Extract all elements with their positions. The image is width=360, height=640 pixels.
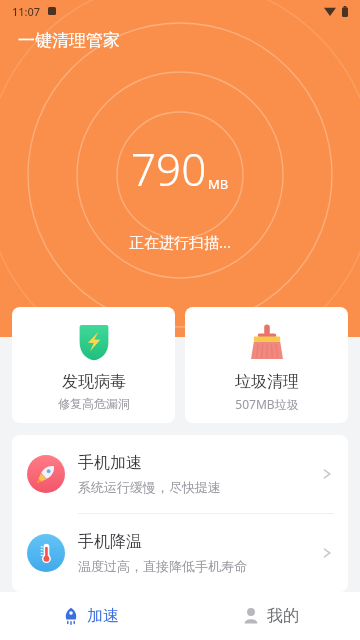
other: 垃圾清理 (247, 323, 287, 363)
staticText: 手机降温 (78, 532, 142, 552)
staticText: 790 (131, 139, 207, 199)
button[interactable]: 加速 (0, 592, 180, 640)
staticText: 加速 (87, 606, 119, 626)
staticText: 温度过高，直接降低手机寿命 (78, 558, 247, 574)
staticText: 507MB垃圾 (235, 396, 299, 412)
staticText: 系统运行缓慢，尽快提速 (78, 479, 221, 495)
button[interactable]: 发现病毒 (12, 307, 175, 423)
button[interactable]: 手机加速 (12, 435, 348, 513)
button[interactable]: 垃圾清理 (185, 307, 348, 423)
staticText: 垃圾清理 (235, 372, 299, 392)
staticText: 修复高危漏洞 (58, 396, 130, 411)
staticText: 手机加速 (78, 453, 142, 473)
other: 发现病毒 (74, 323, 114, 363)
staticText: 我的 (267, 606, 299, 626)
staticText: 11:07 (12, 4, 41, 19)
button[interactable]: 我的 (180, 592, 360, 640)
staticText: 发现病毒 (62, 372, 126, 392)
staticText: 一键清理管家 (18, 30, 120, 51)
other: 手机降温 (27, 534, 65, 572)
other: 手机加速 (27, 455, 65, 493)
staticText: MB (208, 175, 229, 193)
button[interactable]: 手机降温 (12, 514, 348, 592)
staticText: 正在进行扫描... (129, 232, 232, 252)
